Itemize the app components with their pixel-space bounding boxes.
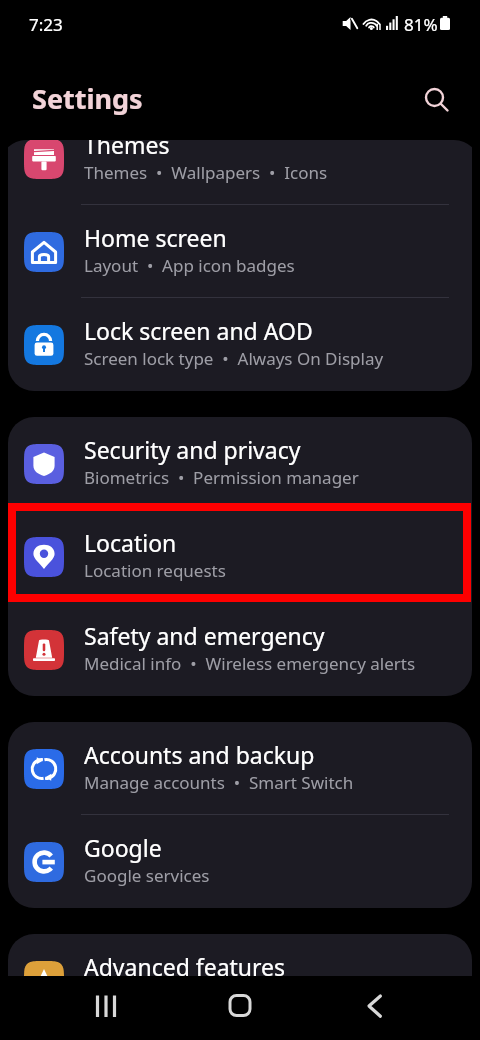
staticText: Biometrics • Permission manager [84, 466, 359, 489]
button[interactable]: Back [355, 985, 395, 1025]
button[interactable]: Advanced features [8, 934, 472, 976]
staticText: Location [84, 527, 177, 558]
button[interactable]: Lock screen and AOD [8, 298, 472, 391]
button[interactable]: Home [220, 985, 260, 1025]
button[interactable]: Accounts and backup [8, 722, 472, 815]
staticText: Location requests [84, 559, 226, 582]
button[interactable]: Security and privacy [8, 417, 472, 510]
button[interactable]: Themes [8, 140, 472, 205]
staticText: Layout • App icon badges [84, 254, 295, 277]
staticText: Accounts and backup [84, 739, 315, 770]
staticText: Google services [84, 864, 210, 887]
staticText: Themes [84, 140, 170, 160]
staticText: Safety and emergency [84, 620, 325, 651]
staticText: Lock screen and AOD [84, 315, 313, 346]
staticText: Home screen [84, 222, 227, 253]
staticText: Screen lock type • Always On Display [84, 347, 384, 370]
button[interactable]: Location [8, 510, 472, 603]
staticText: Advanced features [84, 951, 286, 976]
button[interactable]: Google [8, 815, 472, 908]
staticText: 81% [404, 13, 438, 36]
staticText: 7:23 [29, 13, 63, 36]
staticText: Medical info • Wireless emergency alerts [84, 652, 416, 675]
button[interactable]: Search [412, 76, 456, 120]
staticText: Security and privacy [84, 434, 301, 465]
staticText: Themes • Wallpapers • Icons [84, 161, 328, 184]
button[interactable]: Recent apps [86, 985, 126, 1025]
staticText: Manage accounts • Smart Switch [84, 771, 354, 794]
button[interactable]: Home screen [8, 205, 472, 298]
button[interactable]: Safety and emergency [8, 603, 472, 696]
staticText: Google [84, 832, 162, 863]
staticText: Settings [32, 80, 143, 117]
